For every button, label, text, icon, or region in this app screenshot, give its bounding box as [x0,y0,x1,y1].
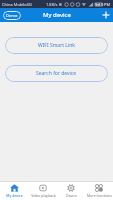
button[interactable]: My device [0,182,29,200]
staticText: Demo [6,13,18,18]
staticText: My device [43,11,71,19]
button[interactable]: Device [57,182,85,200]
staticText: Device [66,193,77,198]
button[interactable]: Demo [3,11,21,20]
staticText: Video playback [31,193,56,198]
button[interactable]: WIFI Smart Link [5,37,108,54]
staticText: WIFI Smart Link [38,42,76,49]
staticText: 1.8K/s [46,2,58,7]
staticText: China Mobile4G [2,2,32,7]
button[interactable]: Add [99,8,113,22]
staticText: Search for device [36,70,77,77]
button[interactable]: Video playback [29,182,57,200]
staticText: My device [6,193,23,198]
staticText: More functions [87,193,112,198]
button[interactable]: Search for device [5,65,108,82]
button[interactable]: More functions [85,182,113,200]
staticText: 5:45 PM [95,2,111,7]
